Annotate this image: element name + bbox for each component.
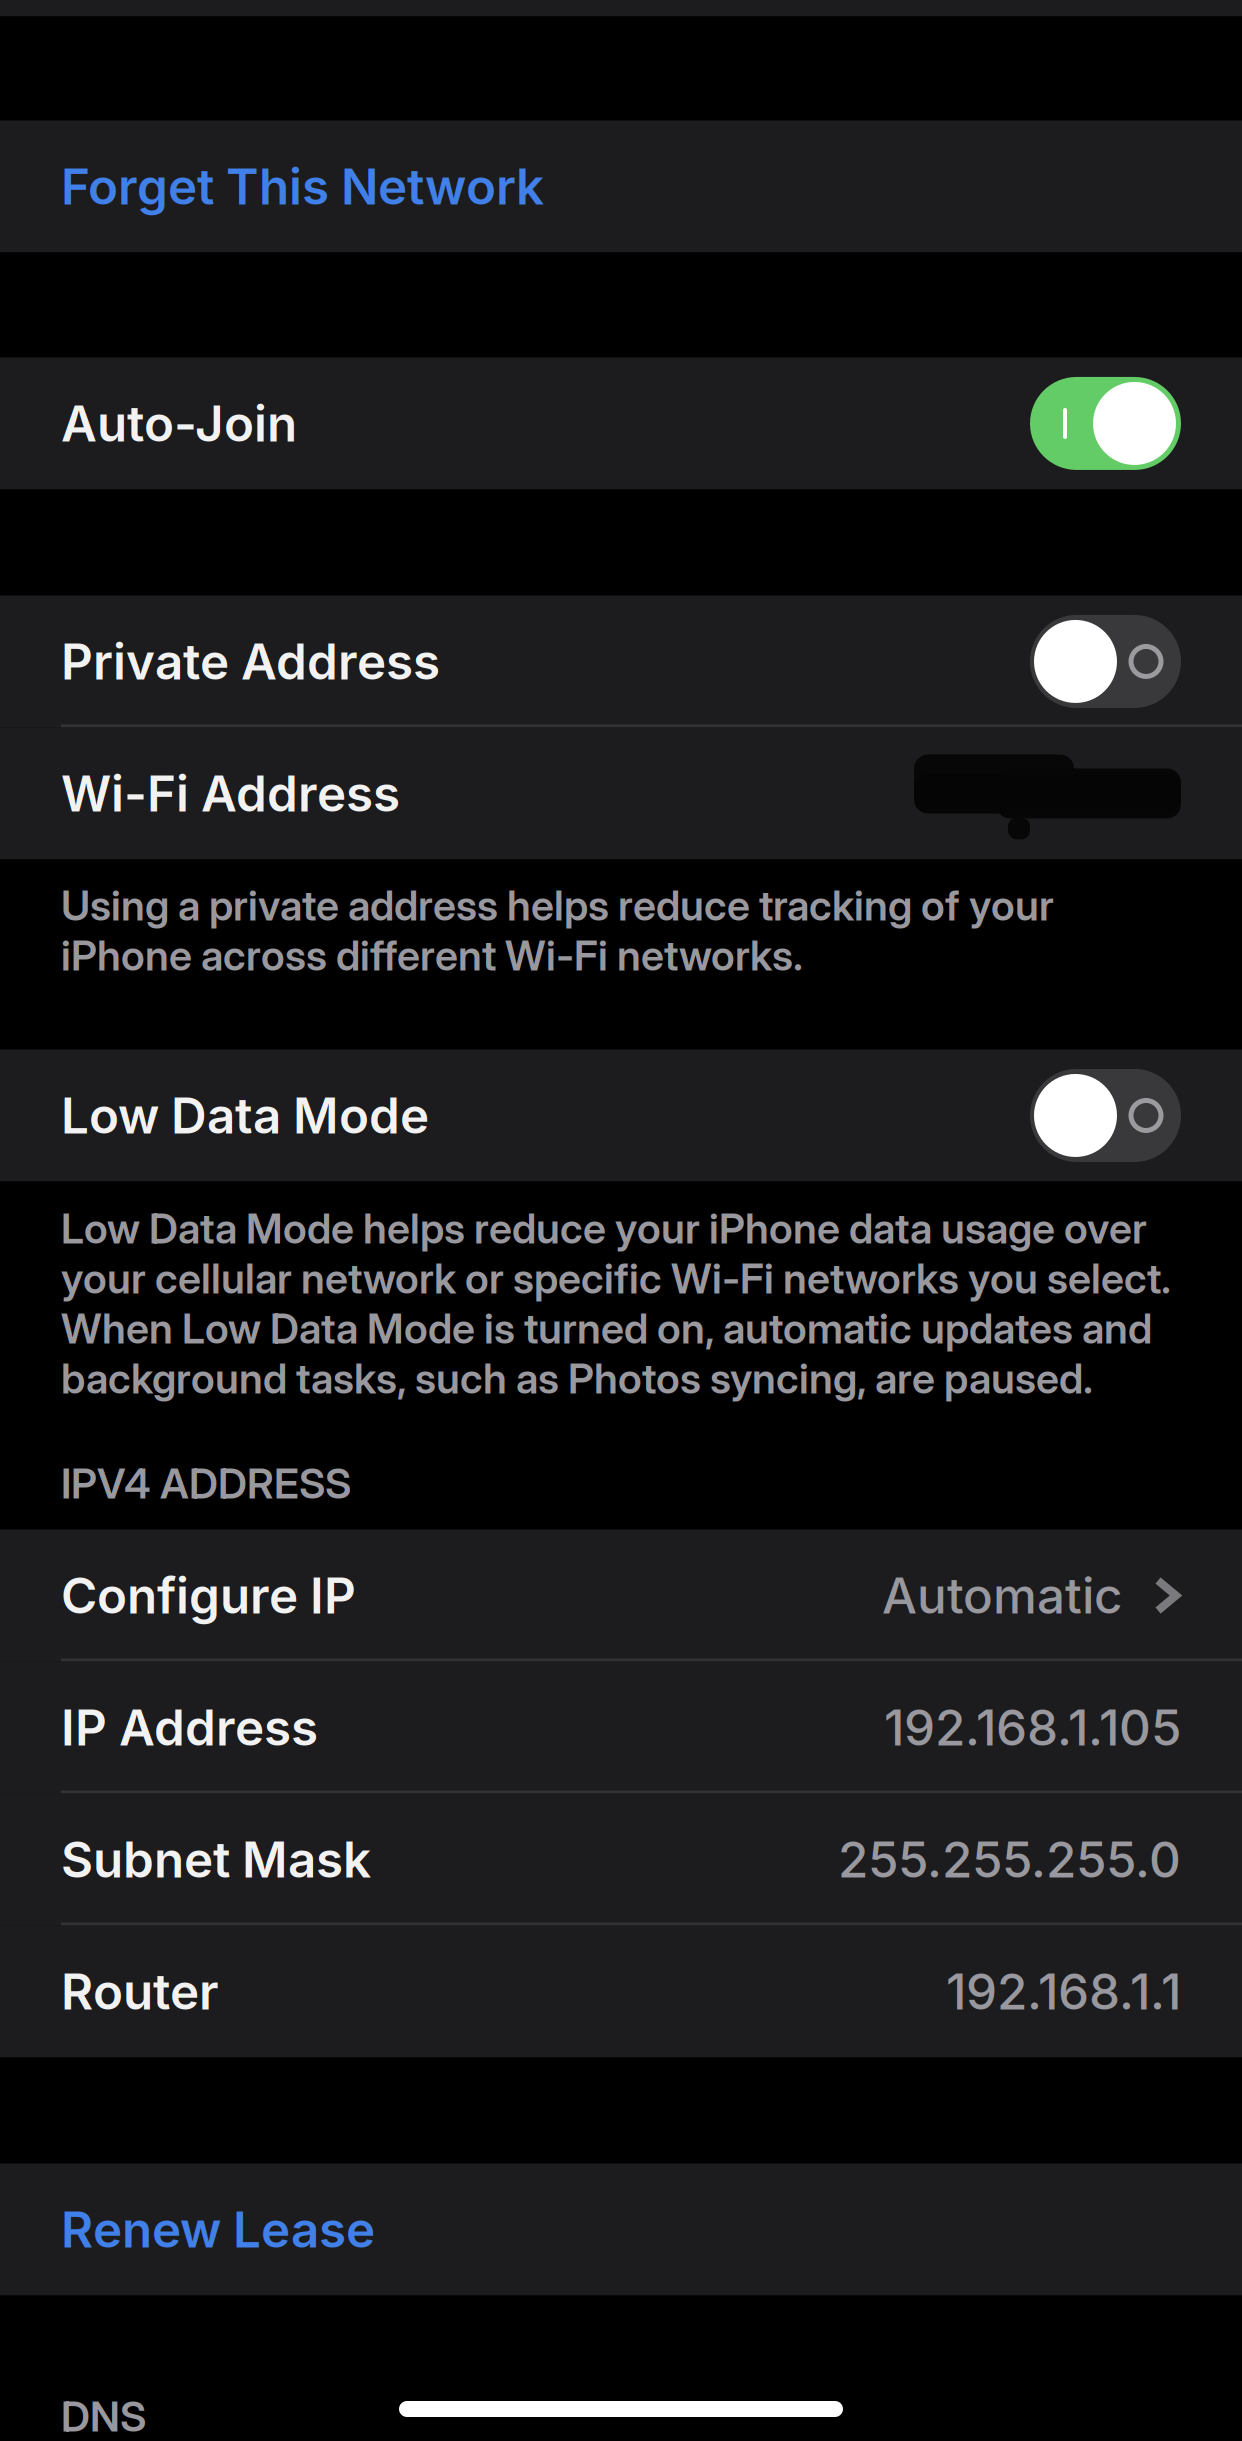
staticText: Subnet Mask: [61, 1830, 371, 1889]
staticText: Configure IP: [61, 1566, 356, 1625]
button[interactable]: Low Data Mode: [0, 1049, 1242, 1181]
button[interactable]: Forget This Network: [0, 120, 1242, 252]
staticText: IP Address: [61, 1698, 318, 1757]
button[interactable]: Router: [0, 1925, 1242, 2057]
button[interactable]: Auto-Join: [0, 357, 1242, 489]
staticText: Auto-Join: [61, 394, 297, 453]
staticText: 255.255.255.0: [838, 1830, 1181, 1889]
staticText: Private Address: [61, 632, 440, 691]
button[interactable]: Wi-Fi Address: [0, 727, 1242, 859]
staticText: Wi-Fi Address: [61, 764, 400, 823]
button[interactable]: Configure IP: [0, 1529, 1242, 1661]
button[interactable]: IP Address: [0, 1661, 1242, 1793]
staticText: IPV4 ADDRESS: [61, 1458, 351, 1508]
staticText: 192.168.1.1: [946, 1962, 1181, 2021]
button[interactable]: Renew Lease: [0, 2163, 1242, 2295]
button[interactable]: Subnet Mask: [0, 1793, 1242, 1925]
staticText: 192.168.1.105: [884, 1698, 1181, 1757]
staticText: Forget This Network: [61, 157, 544, 216]
staticText: DNS: [61, 2391, 146, 2441]
staticText: Automatic: [882, 1566, 1122, 1625]
staticText: Low Data Mode helps reduce your iPhone d…: [61, 1203, 1170, 1403]
staticText: Using a private address helps reduce tra…: [61, 880, 1054, 980]
button[interactable]: Private Address: [0, 595, 1242, 727]
staticText: Renew Lease: [61, 2200, 375, 2259]
staticText: Low Data Mode: [61, 1086, 429, 1145]
staticText: Router: [61, 1962, 219, 2021]
